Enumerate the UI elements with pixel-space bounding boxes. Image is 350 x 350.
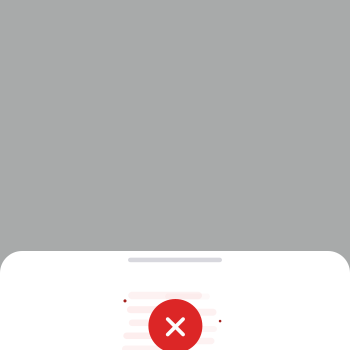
- button[interactable]: Cancelled: [148, 299, 202, 350]
